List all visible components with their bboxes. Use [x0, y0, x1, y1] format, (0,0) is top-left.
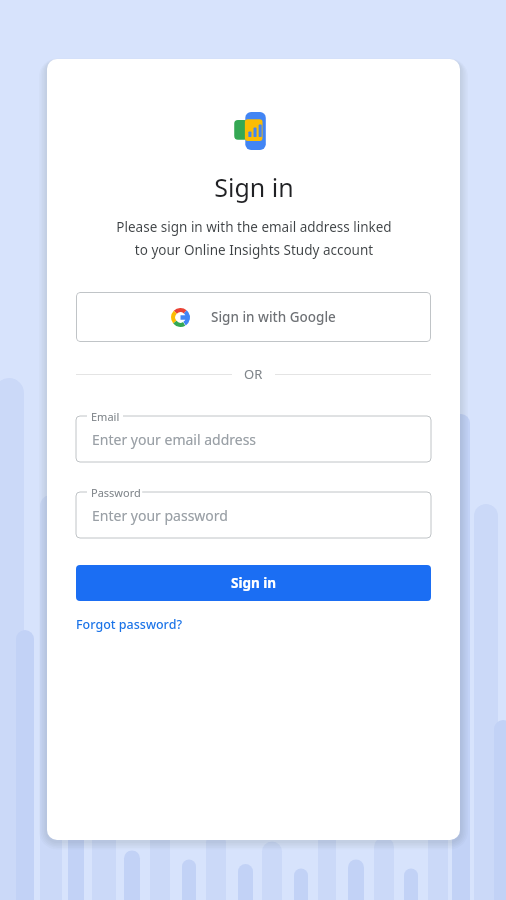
staticText: Enter your password [92, 506, 228, 525]
staticText: Forgot password? [76, 616, 182, 633]
button[interactable]: Password [76, 484, 431, 538]
staticText: Password [91, 485, 141, 500]
button[interactable]: Sign in with Google [76, 292, 431, 342]
staticText: Email [91, 409, 120, 424]
button[interactable]: Email [76, 408, 431, 462]
staticText: Please sign in with the email address li… [116, 218, 392, 259]
button[interactable]: Forgot password? [76, 616, 182, 633]
staticText: OR [244, 365, 263, 383]
button[interactable]: Sign in [76, 565, 431, 601]
staticText: Sign in with Google [211, 308, 336, 326]
staticText: Enter your email address [92, 430, 257, 449]
staticText: Sign in [214, 170, 294, 204]
staticText: Sign in [231, 574, 277, 592]
other: Online Insights Study logo [233, 112, 274, 150]
